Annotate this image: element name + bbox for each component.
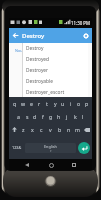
staticText: s [26, 113, 29, 120]
staticText: v [49, 126, 52, 133]
button[interactable]: r [35, 97, 43, 110]
staticText: 11:30 PM [71, 20, 91, 26]
staticText: w [21, 100, 26, 107]
button[interactable]: m [73, 123, 82, 136]
staticText: English [44, 144, 57, 149]
button[interactable]: d [31, 110, 39, 123]
staticText: j [66, 113, 68, 120]
button[interactable]: Enter [78, 142, 90, 154]
staticText: i [70, 100, 72, 107]
staticText: g [49, 113, 53, 120]
button[interactable]: x [28, 123, 37, 136]
staticText: l [82, 113, 84, 120]
staticText: ▾ [50, 149, 52, 152]
staticText: Noun [15, 48, 25, 53]
button[interactable]: y [51, 97, 59, 110]
button[interactable]: Back [9, 29, 22, 42]
staticText: b [58, 126, 62, 133]
staticText: c [40, 126, 43, 133]
staticText: k [74, 113, 77, 120]
staticText: p [85, 100, 89, 107]
button[interactable]: k [71, 110, 79, 123]
button[interactable]: s [23, 110, 31, 123]
button[interactable]: Recents [69, 160, 79, 170]
staticText: Destroyed [26, 56, 50, 63]
button[interactable]: t [43, 97, 51, 110]
button[interactable]: Destroy [23, 43, 88, 54]
staticText: Destroyer [26, 67, 49, 74]
staticText: h [57, 113, 61, 120]
button[interactable]: c [37, 123, 46, 136]
button[interactable]: u [59, 97, 67, 110]
button[interactable]: f [39, 110, 47, 123]
button[interactable]: Back [22, 160, 32, 170]
staticText: 123& [12, 145, 22, 150]
button[interactable]: Home [46, 160, 56, 170]
staticText: a [17, 113, 20, 120]
button[interactable]: Destroyer_escort [23, 87, 88, 97]
staticText: o [77, 100, 81, 107]
button[interactable]: English [25, 143, 76, 153]
button[interactable]: p [83, 97, 91, 110]
button[interactable]: o [75, 97, 83, 110]
button[interactable]: 123& [9, 136, 25, 159]
button[interactable]: b [55, 123, 64, 136]
staticText: Destroyer_escort [26, 89, 65, 96]
staticText: Destroyable [26, 78, 53, 85]
staticText: r [38, 100, 41, 107]
staticText: q [13, 100, 17, 107]
button[interactable]: a [14, 110, 23, 123]
button[interactable]: e [27, 97, 35, 110]
button[interactable]: Destroyable [23, 76, 88, 87]
staticText: n [67, 126, 71, 133]
staticText: Destroy [22, 32, 45, 40]
button[interactable]: g [47, 110, 55, 123]
button[interactable]: Shift [9, 123, 19, 136]
button[interactable]: Destroyed [23, 54, 88, 65]
button[interactable]: v [46, 123, 55, 136]
button[interactable]: l [79, 110, 87, 123]
button[interactable]: i [67, 97, 75, 110]
button[interactable]: z [19, 123, 28, 136]
staticText: t [46, 100, 48, 107]
staticText: m [75, 126, 80, 133]
button[interactable]: Backspace [82, 123, 92, 136]
staticText: e [30, 100, 33, 107]
staticText: z [22, 126, 25, 133]
staticText: f [42, 113, 44, 120]
button[interactable]: Destroyer [23, 65, 88, 76]
button[interactable]: Settings [79, 29, 92, 42]
button[interactable]: w [19, 97, 27, 110]
staticText: x [31, 126, 34, 133]
button[interactable]: j [63, 110, 71, 123]
staticText: y [54, 100, 57, 107]
button[interactable]: h [55, 110, 63, 123]
staticText: u [61, 100, 65, 107]
staticText: Destroy [26, 45, 44, 52]
button[interactable]: q [10, 97, 19, 110]
button[interactable]: n [64, 123, 73, 136]
staticText: d [33, 113, 37, 120]
